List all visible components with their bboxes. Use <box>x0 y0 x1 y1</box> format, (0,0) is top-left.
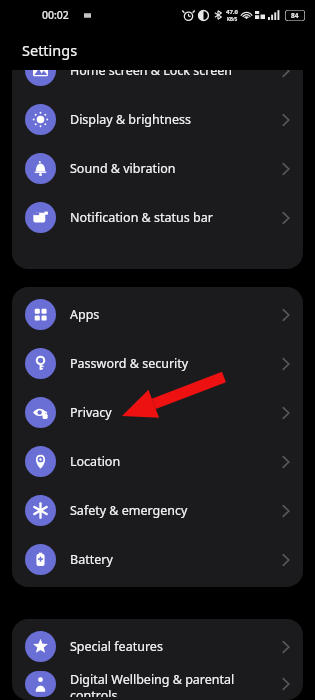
staticText: Location <box>70 453 276 470</box>
staticText: Sound & vibration <box>70 160 276 177</box>
button[interactable]: Display & brightness <box>12 95 303 144</box>
staticText: 47.0 <box>226 8 238 16</box>
staticText: Display & brightness <box>70 111 276 128</box>
button[interactable]: Special features <box>12 622 303 671</box>
staticText: 84 <box>291 11 299 20</box>
staticText: Settings <box>22 40 78 60</box>
staticText: Password & security <box>70 355 276 372</box>
button[interactable]: Password & security <box>12 339 303 388</box>
staticText: Apps <box>70 306 276 323</box>
button[interactable]: Sound & vibration <box>12 144 303 193</box>
staticText: Home screen & Lock screen <box>70 70 276 79</box>
button[interactable]: Location <box>12 437 303 486</box>
staticText: Battery <box>70 551 276 568</box>
button[interactable]: Battery <box>12 535 303 584</box>
staticText: KB/S <box>227 16 238 22</box>
button[interactable]: Home screen & Lock screen <box>12 70 303 95</box>
staticText: Special features <box>70 638 276 655</box>
staticText: Digital Wellbeing & parental controls <box>70 671 276 697</box>
staticText: Safety & emergency <box>70 502 276 519</box>
button[interactable]: Notification & status bar <box>12 193 303 242</box>
staticText: Privacy <box>70 404 276 421</box>
button[interactable]: Privacy <box>12 388 303 437</box>
staticText: Notification & status bar <box>70 209 276 226</box>
button[interactable]: Safety & emergency <box>12 486 303 535</box>
button[interactable]: Apps <box>12 290 303 339</box>
button[interactable]: Digital Wellbeing & parental controls <box>12 671 303 697</box>
staticText: 00:02 <box>42 8 69 22</box>
